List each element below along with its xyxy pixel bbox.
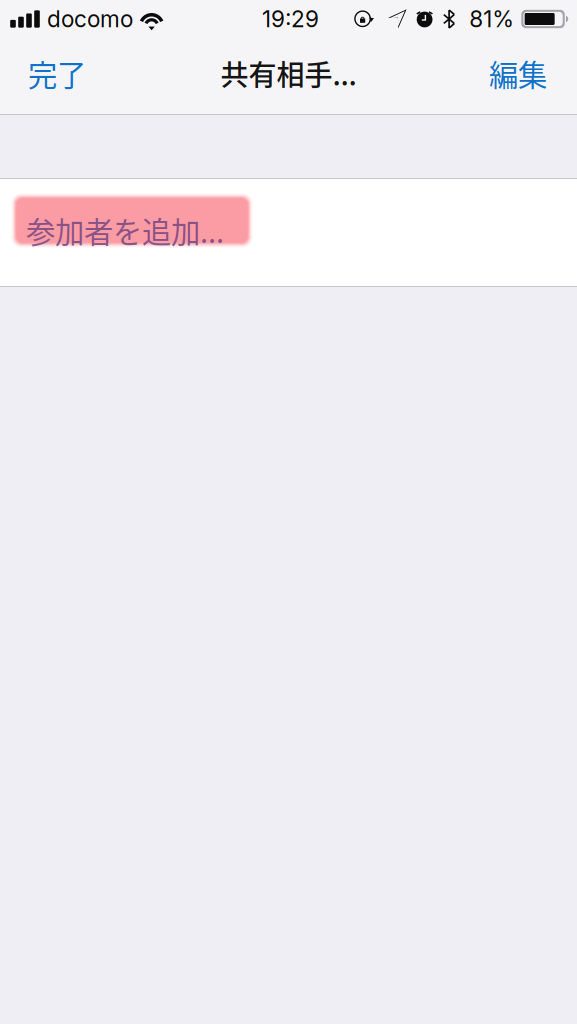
staticText: 完了	[28, 52, 86, 94]
staticText: docomo	[47, 5, 133, 33]
staticText: 共有相手...	[220, 53, 356, 93]
button[interactable]: 完了	[21, 43, 93, 103]
staticText: 編集	[489, 52, 547, 94]
staticText: 参加者を追加...	[26, 209, 224, 251]
staticText: 19:29	[262, 5, 319, 33]
staticText: 81%	[469, 5, 514, 33]
button[interactable]: 編集	[482, 43, 554, 103]
button[interactable]: 参加者を追加...	[0, 179, 577, 287]
